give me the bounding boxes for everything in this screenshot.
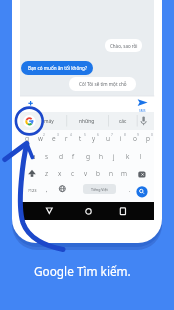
- button[interactable]: [42, 203, 57, 217]
- staticText: n: [109, 169, 113, 178]
- staticText: 8: [124, 133, 126, 137]
- button[interactable]: [136, 169, 148, 180]
- button[interactable]: q: [20, 133, 33, 144]
- staticText: o: [133, 134, 137, 143]
- staticText: u: [106, 134, 110, 143]
- staticText: r: [65, 134, 68, 143]
- button[interactable]: Tiếng Việt: [83, 184, 116, 194]
- button[interactable]: x: [53, 168, 66, 179]
- staticText: Chào, sao rồi: [110, 43, 138, 49]
- button[interactable]: s: [40, 151, 53, 162]
- staticText: Cô! Tôi sẽ tìm một chỗ: [79, 81, 127, 87]
- staticText: q: [25, 134, 29, 143]
- button[interactable]: j: [107, 151, 120, 162]
- staticText: Google Tìm kiếm.: [34, 263, 131, 279]
- button[interactable]: n: [104, 168, 117, 179]
- staticText: h: [99, 152, 103, 161]
- button[interactable]: y: [87, 133, 100, 144]
- staticText: 1: [30, 133, 32, 137]
- button[interactable]: t: [74, 133, 87, 144]
- button[interactable]: c: [66, 168, 79, 179]
- staticText: w: [38, 134, 43, 143]
- staticText: 2: [43, 133, 45, 137]
- staticText: 0: [151, 133, 153, 137]
- button[interactable]: [138, 114, 149, 127]
- button[interactable]: những: [72, 116, 102, 126]
- staticText: e: [52, 134, 56, 143]
- staticText: ,: [46, 186, 48, 193]
- staticText: SMS: [139, 109, 146, 113]
- button[interactable]: u: [101, 133, 114, 144]
- staticText: 5: [84, 133, 86, 137]
- staticText: 4: [70, 133, 72, 137]
- button[interactable]: v: [79, 168, 92, 179]
- button[interactable]: w: [34, 133, 47, 144]
- button[interactable]: l: [134, 151, 147, 162]
- staticText: d: [59, 152, 63, 161]
- button[interactable]: d: [54, 151, 67, 162]
- staticText: 3: [57, 133, 59, 137]
- button[interactable]: z: [40, 168, 53, 179]
- button[interactable]: r: [60, 133, 73, 144]
- staticText: máy: [44, 118, 54, 125]
- button[interactable]: [136, 186, 148, 198]
- button[interactable]: b: [91, 168, 104, 179]
- staticText: j: [113, 152, 115, 161]
- button[interactable]: [115, 203, 130, 217]
- button[interactable]: g: [81, 151, 94, 162]
- button[interactable]: máy: [37, 116, 61, 126]
- button[interactable]: ,: [43, 185, 51, 194]
- staticText: 7: [111, 133, 113, 137]
- staticText: b: [96, 169, 100, 178]
- staticText: t: [79, 134, 82, 143]
- staticText: i: [120, 134, 122, 143]
- button[interactable]: .: [126, 185, 134, 194]
- button[interactable]: ?123: [24, 186, 40, 194]
- button[interactable]: các: [111, 116, 135, 126]
- staticText: f: [72, 152, 75, 161]
- staticText: a: [32, 152, 36, 161]
- button[interactable]: [135, 96, 151, 113]
- staticText: m: [121, 169, 127, 178]
- button[interactable]: o: [128, 133, 141, 144]
- button[interactable]: i: [114, 133, 127, 144]
- staticText: x: [58, 169, 62, 178]
- staticText: c: [71, 169, 75, 178]
- button[interactable]: h: [94, 151, 107, 162]
- button[interactable]: m: [117, 168, 130, 179]
- button[interactable]: [56, 183, 68, 194]
- button[interactable]: f: [67, 151, 80, 162]
- button[interactable]: [25, 97, 36, 109]
- button[interactable]: k: [121, 151, 134, 162]
- staticText: .: [129, 186, 131, 193]
- button[interactable]: e: [47, 133, 60, 144]
- staticText: s: [45, 152, 49, 161]
- staticText: 9: [137, 133, 139, 137]
- staticText: những: [79, 118, 95, 125]
- staticText: z: [45, 169, 49, 178]
- staticText: y: [92, 134, 96, 143]
- staticText: g: [86, 152, 90, 161]
- staticText: k: [126, 152, 130, 161]
- staticText: Bạn có muốn ăn tối không?: [28, 65, 87, 71]
- button[interactable]: a: [27, 151, 40, 162]
- button[interactable]: [26, 168, 38, 179]
- button[interactable]: [24, 115, 36, 127]
- staticText: v: [84, 169, 88, 178]
- staticText: 6: [97, 133, 99, 137]
- staticText: Tiếng Việt: [91, 187, 108, 192]
- staticText: p: [146, 134, 150, 143]
- button[interactable]: [81, 203, 96, 217]
- button[interactable]: p: [141, 133, 154, 144]
- staticText: l: [140, 152, 142, 161]
- staticText: các: [119, 118, 127, 125]
- staticText: ?123: [28, 188, 37, 193]
